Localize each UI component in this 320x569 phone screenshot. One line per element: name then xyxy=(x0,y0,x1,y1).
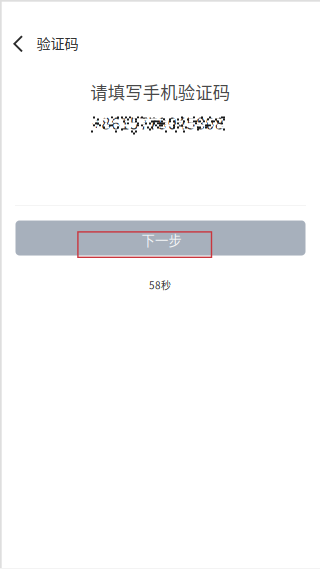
staticText: 58秒 xyxy=(149,278,171,292)
staticText: 请填写手机验证码 xyxy=(90,79,230,104)
button[interactable]: 返回 验证码 xyxy=(0,25,110,61)
staticText: 验证码 xyxy=(36,33,78,53)
button[interactable]: 下一步 xyxy=(15,220,305,255)
staticText: 下一步 xyxy=(142,230,181,250)
staticText: +8615779045808 xyxy=(92,111,224,134)
